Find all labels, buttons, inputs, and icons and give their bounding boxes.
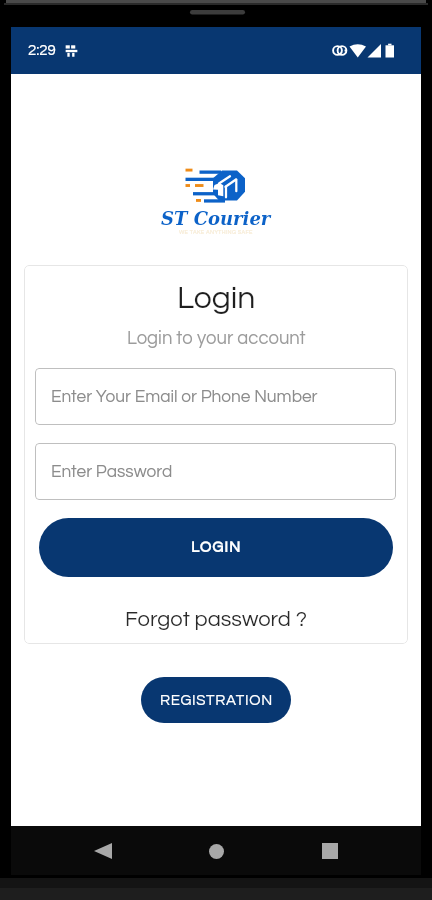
button[interactable]: Home [194,829,238,873]
button[interactable]: LOGIN [39,518,393,577]
staticText: Login [177,282,256,315]
button[interactable]: Recent apps [308,829,352,873]
staticText: LOGIN [191,540,242,555]
staticText: Forgot password ? [125,608,307,631]
button[interactable]: Forgot password ? [117,605,315,634]
button[interactable]: Back [81,829,125,873]
staticText: Enter Password [51,463,173,481]
staticText: WE TAKE ANYTHING SAFE [179,229,253,235]
staticText: 2:29 [28,43,56,58]
staticText: Login to your account [127,329,306,348]
button[interactable]: REGISTRATION [141,677,291,723]
staticText: ST Courier [161,208,271,229]
button[interactable]: Enter Password [35,443,396,500]
staticText: Enter Your Email or Phone Number [51,388,318,406]
button[interactable]: Enter Your Email or Phone Number [35,368,396,425]
staticText: REGISTRATION [160,693,273,708]
